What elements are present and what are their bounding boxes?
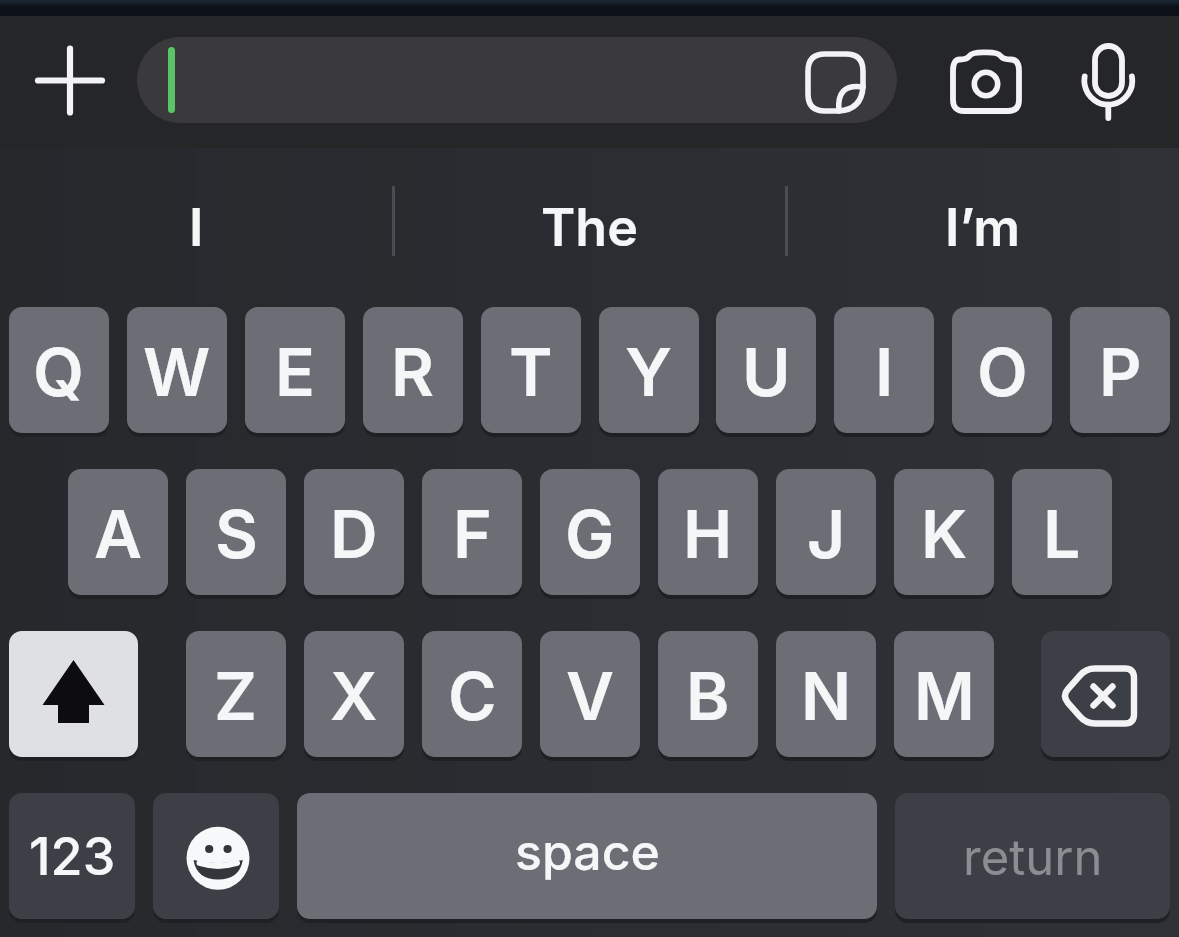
staticText: F [453,494,492,574]
button[interactable]: U [716,307,816,433]
staticText: R [391,332,435,412]
button[interactable] [30,40,110,120]
button[interactable]: I [0,156,393,299]
staticText: B [686,656,730,736]
staticText: E [275,332,315,412]
button[interactable]: H [658,469,758,595]
button[interactable]: F [422,469,522,595]
staticText: H [683,494,733,574]
button[interactable]: W [127,307,227,433]
button[interactable]: Y [599,307,699,433]
button[interactable]: Z [186,631,286,757]
button[interactable]: I [834,307,934,433]
button[interactable]: N [776,631,876,757]
staticText: Z [214,656,258,736]
staticText: I [875,332,894,412]
staticText: N [801,656,852,736]
staticText: D [330,494,378,574]
button[interactable] [945,44,1027,120]
staticText: C [448,656,497,736]
staticText: M [914,656,975,736]
staticText: W [143,332,211,412]
button[interactable]: 123 [9,793,135,919]
button[interactable]: K [894,469,994,595]
button[interactable] [137,37,897,123]
button[interactable]: G [540,469,640,595]
button[interactable]: Q [9,307,109,433]
staticText: X [330,656,378,736]
button[interactable]: X [304,631,404,757]
button[interactable] [800,46,872,118]
staticText: S [215,494,258,574]
button[interactable]: The [393,156,786,299]
staticText: O [977,332,1028,412]
staticText: L [1043,494,1081,574]
button[interactable]: T [481,307,581,433]
staticText: space [515,822,660,882]
button[interactable]: S [186,469,286,595]
staticText: P [1099,332,1142,412]
button[interactable]: space [297,793,877,919]
button[interactable]: P [1070,307,1170,433]
button[interactable]: J [776,469,876,595]
staticText: G [565,494,615,574]
staticText: 123 [29,825,116,888]
button[interactable]: V [540,631,640,757]
staticText: Q [33,332,85,412]
button[interactable]: B [658,631,758,757]
staticText: U [742,332,791,412]
button[interactable]: I’m [786,156,1179,299]
staticText: The [541,196,638,259]
button[interactable] [153,793,279,919]
button[interactable]: E [245,307,345,433]
staticText: I [189,196,204,259]
button[interactable] [1041,631,1170,757]
button[interactable]: C [422,631,522,757]
button[interactable]: D [304,469,404,595]
staticText: I’m [945,196,1021,259]
button[interactable]: return [895,793,1170,919]
button[interactable] [9,631,138,757]
button[interactable]: O [952,307,1052,433]
staticText: J [807,494,846,574]
staticText: K [921,494,968,574]
staticText: V [566,656,615,736]
button[interactable]: M [894,631,994,757]
staticText: A [94,494,143,574]
staticText: Y [625,332,673,412]
button[interactable]: R [363,307,463,433]
button[interactable] [1076,40,1140,124]
button[interactable]: A [68,469,168,595]
staticText: return [963,828,1103,887]
button[interactable]: L [1012,469,1112,595]
staticText: T [509,332,553,412]
